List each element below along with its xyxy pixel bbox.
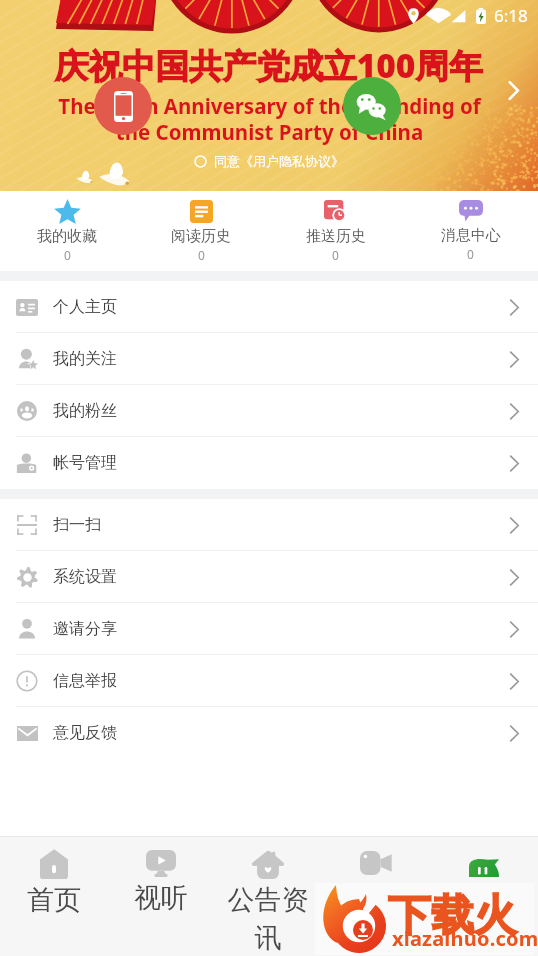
button[interactable]: App download [94, 77, 152, 135]
staticText: xiazaihuo.com [392, 925, 538, 952]
staticText: 我的收藏 [37, 227, 97, 246]
button[interactable]: WeChat [343, 77, 401, 135]
staticText: 扫一扫 [53, 515, 101, 535]
button[interactable]: 系统设置 [0, 551, 538, 603]
button[interactable]: 消息中心 [403, 191, 538, 271]
button[interactable]: 我的关注 [0, 333, 538, 385]
staticText: 首页 [12, 883, 96, 917]
button[interactable]: 首页 [0, 837, 107, 956]
staticText: 下载火 [388, 889, 517, 943]
staticText: 0 [332, 247, 339, 263]
staticText: 公告资讯 [226, 883, 310, 955]
button[interactable]: 便民服务 [322, 837, 430, 956]
staticText: 0 [467, 246, 474, 262]
staticText: 系统设置 [53, 567, 117, 587]
staticText: 信息举报 [53, 671, 117, 691]
staticText: 推送历史 [306, 227, 366, 246]
staticText: 同意《用户隐私协议》 [214, 153, 344, 169]
staticText: 0 [198, 247, 205, 263]
staticText: 意见反馈 [53, 723, 117, 743]
button[interactable]: 我的 [430, 837, 538, 956]
button[interactable]: 信息举报 [0, 655, 538, 707]
button[interactable]: 我的收藏 [0, 191, 134, 271]
button[interactable]: 帐号管理 [0, 437, 538, 489]
button[interactable]: 邀请分享 [0, 603, 538, 655]
staticText: 庆祝中国共产党成立100周年 [55, 42, 483, 88]
button[interactable]: 个人主页 [0, 281, 538, 333]
staticText: 视听 [119, 881, 203, 915]
staticText: 邀请分享 [53, 619, 117, 639]
staticText: 消息中心 [441, 226, 501, 245]
button[interactable]: 推送历史 [268, 191, 403, 271]
staticText: 我的粉丝 [53, 401, 117, 421]
button[interactable]: 公告资讯 [214, 837, 322, 956]
button[interactable]: 视听 [107, 837, 214, 956]
staticText: 6:18 [494, 4, 528, 27]
button[interactable]: 我的粉丝 [0, 385, 538, 437]
staticText: 0 [64, 247, 71, 263]
staticText: 我的关注 [53, 349, 117, 369]
button[interactable]: 同意《用户隐私协议》 [194, 153, 344, 169]
staticText: The 100th Anniversary of the Founding of… [58, 92, 481, 146]
staticText: 个人主页 [53, 297, 117, 317]
staticText: 便民服务 [334, 880, 418, 952]
staticText: 帐号管理 [53, 453, 117, 473]
button[interactable]: 阅读历史 [134, 191, 268, 271]
staticText: 我的 [442, 881, 526, 915]
staticText: 阅读历史 [171, 227, 231, 246]
button[interactable]: 扫一扫 [0, 499, 538, 551]
button[interactable]: 意见反馈 [0, 707, 538, 759]
button[interactable]: More [498, 75, 528, 105]
